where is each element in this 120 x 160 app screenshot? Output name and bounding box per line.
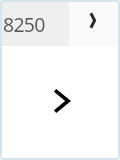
button[interactable]: 8250: [0, 0, 69, 46]
staticText: 8250: [3, 11, 45, 38]
button[interactable]: Next: [69, 0, 120, 46]
